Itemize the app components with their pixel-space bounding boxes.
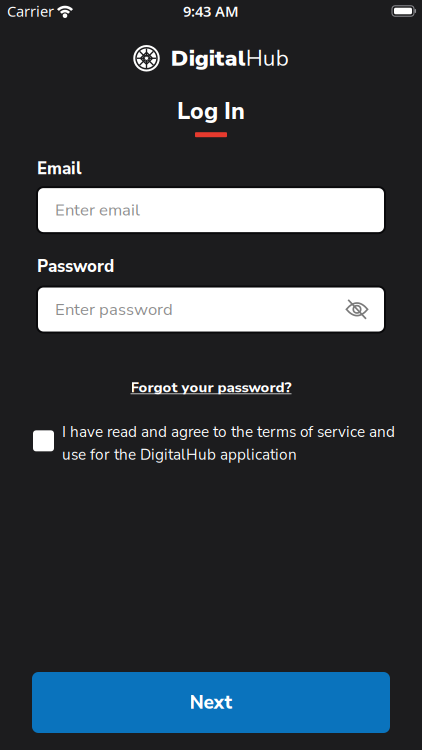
staticText: Log In xyxy=(177,96,245,127)
staticText: Next xyxy=(189,690,232,715)
staticText: Password xyxy=(37,255,114,278)
staticText: use for the DigitalHub application xyxy=(62,444,297,465)
staticText: Enter email xyxy=(55,199,140,221)
staticText: Enter password xyxy=(55,298,173,321)
staticText: 9:43 AM xyxy=(183,1,239,21)
staticText: Email xyxy=(37,157,82,180)
staticText: Digital xyxy=(171,43,246,74)
staticText: I have read and agree to the terms of se… xyxy=(62,422,395,442)
staticText: Carrier xyxy=(7,1,54,21)
staticText: Forgot your password? xyxy=(130,377,291,397)
button[interactable]: Next xyxy=(32,672,390,733)
button[interactable]: Agree to terms of service xyxy=(33,430,54,451)
staticText: Hub xyxy=(246,43,289,74)
button[interactable]: Show password xyxy=(345,299,369,320)
button[interactable]: Forgot your password? xyxy=(130,377,291,397)
